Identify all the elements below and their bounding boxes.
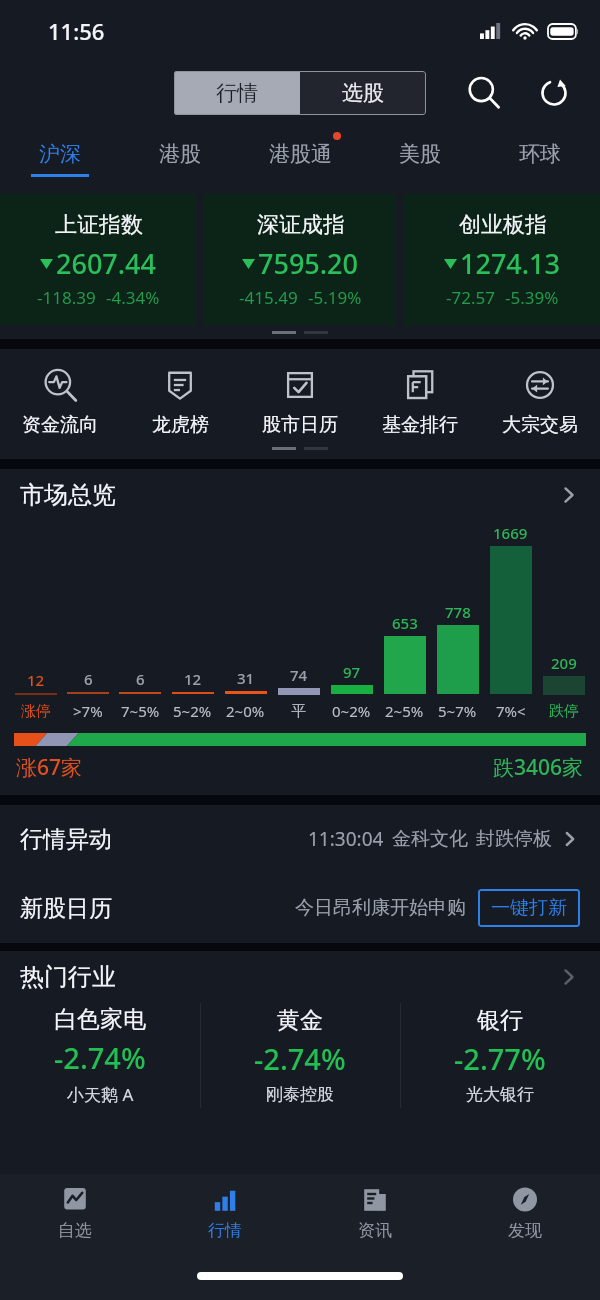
staticText: 涨67家 — [16, 753, 83, 782]
staticText: 1669 — [493, 523, 528, 543]
staticText: 封跌停板 — [476, 827, 552, 851]
button[interactable]: 热门行业 — [0, 951, 600, 1003]
staticText: 97 — [343, 662, 361, 682]
button[interactable]: 发现 — [450, 1174, 600, 1252]
button[interactable]: 股市日历 — [240, 367, 360, 437]
button[interactable]: 黄金 — [200, 1003, 400, 1108]
staticText: 光大银行 — [466, 1084, 534, 1105]
staticText: 股市日历 — [262, 413, 338, 437]
button[interactable]: 一键打新 — [478, 889, 580, 927]
staticText: 2~0% — [226, 701, 265, 721]
button[interactable]: 市场总览 — [0, 469, 600, 521]
button[interactable]: 银行 — [400, 1003, 600, 1108]
button[interactable]: 新股日历 — [0, 873, 600, 943]
button[interactable]: 自选 — [0, 1174, 150, 1252]
button[interactable]: 深证成指 — [204, 194, 396, 325]
staticText: 黄金 — [277, 1006, 323, 1035]
staticText: -415.49 — [239, 286, 298, 309]
staticText: 刚泰控股 — [266, 1084, 334, 1105]
staticText: 653 — [392, 613, 418, 633]
button[interactable]: 美股 — [360, 124, 480, 194]
staticText: -2.74% — [254, 1039, 346, 1078]
staticText: 行情 — [208, 1220, 242, 1241]
staticText: 发现 — [508, 1220, 542, 1241]
staticText: 白色家电 — [54, 1005, 146, 1034]
staticText: 209 — [551, 653, 577, 673]
staticText: 12 — [184, 669, 202, 689]
button[interactable]: 龙虎榜 — [120, 367, 240, 437]
staticText: 行情 — [216, 80, 258, 106]
staticText: 5~7% — [438, 701, 477, 721]
staticText: 港股通 — [269, 141, 332, 167]
button[interactable]: 行情 — [174, 71, 300, 115]
staticText: 一键打新 — [491, 896, 567, 920]
staticText: 31 — [237, 668, 255, 688]
staticText: 沪深 — [39, 141, 81, 167]
staticText: -72.57 — [446, 286, 495, 309]
button[interactable]: Search — [460, 69, 508, 117]
staticText: 环球 — [519, 141, 561, 167]
staticText: 跌停 — [549, 702, 579, 721]
button[interactable]: 港股 — [120, 124, 240, 194]
staticText: -2.74% — [54, 1038, 146, 1077]
button[interactable]: 资讯 — [300, 1174, 450, 1252]
staticText: 美股 — [399, 141, 441, 167]
button[interactable]: 创业板指 — [404, 194, 600, 325]
staticText: 5~2% — [173, 701, 212, 721]
staticText: -4.34% — [106, 286, 160, 309]
staticText: 778 — [445, 602, 471, 622]
staticText: 1274.13 — [460, 245, 561, 282]
staticText: 跌3406家 — [493, 753, 584, 782]
staticText: 深证成指 — [257, 211, 345, 239]
button[interactable]: 选股 — [300, 71, 426, 115]
staticText: 资讯 — [358, 1220, 392, 1241]
staticText: 涨停 — [21, 702, 51, 721]
button[interactable]: 大宗交易 — [480, 367, 600, 437]
staticText: 7%< — [496, 701, 526, 721]
button[interactable]: 行情异动 — [0, 805, 600, 873]
staticText: 7~5% — [121, 701, 160, 721]
staticText: 市场总览 — [20, 480, 116, 510]
staticText: -2.77% — [454, 1039, 546, 1078]
staticText: 11:30:04 — [308, 826, 384, 852]
staticText: 6 — [136, 669, 145, 689]
staticText: 11:56 — [48, 16, 105, 46]
staticText: 金科文化 — [392, 827, 468, 851]
staticText: 平 — [291, 702, 306, 721]
button[interactable]: 行情 — [150, 1174, 300, 1252]
staticText: -118.39 — [37, 286, 96, 309]
staticText: 创业板指 — [459, 211, 547, 239]
button[interactable]: 港股通 — [240, 124, 360, 194]
button[interactable]: 沪深 — [0, 124, 120, 194]
staticText: 大宗交易 — [502, 413, 578, 437]
staticText: 2~5% — [385, 701, 424, 721]
staticText: 行情异动 — [20, 825, 112, 854]
button[interactable]: 环球 — [480, 124, 600, 194]
staticText: 港股 — [159, 141, 201, 167]
staticText: 今日昂利康开始申购 — [295, 896, 466, 920]
button[interactable]: 白色家电 — [0, 1003, 200, 1108]
staticText: 上证指数 — [55, 211, 143, 239]
button[interactable]: 上证指数 — [0, 194, 196, 325]
staticText: 0~2% — [332, 701, 371, 721]
staticText: 新股日历 — [20, 894, 112, 923]
staticText: -5.39% — [505, 286, 559, 309]
staticText: 74 — [290, 665, 308, 685]
staticText: 2607.44 — [56, 245, 157, 282]
button[interactable]: 基金排行 — [360, 367, 480, 437]
staticText: 12 — [27, 670, 45, 690]
staticText: 6 — [84, 669, 93, 689]
staticText: 选股 — [342, 80, 384, 106]
staticText: 龙虎榜 — [152, 413, 209, 437]
staticText: 基金排行 — [382, 413, 458, 437]
staticText: 小天鹅 A — [67, 1083, 134, 1106]
button[interactable]: Refresh — [530, 69, 578, 117]
staticText: 热门行业 — [20, 962, 116, 992]
staticText: 银行 — [477, 1006, 523, 1035]
staticText: 自选 — [58, 1220, 92, 1241]
staticText: 资金流向 — [22, 413, 98, 437]
button[interactable]: 资金流向 — [0, 367, 120, 437]
staticText: -5.19% — [308, 286, 362, 309]
staticText: >7% — [73, 701, 103, 721]
staticText: 7595.20 — [258, 245, 359, 282]
